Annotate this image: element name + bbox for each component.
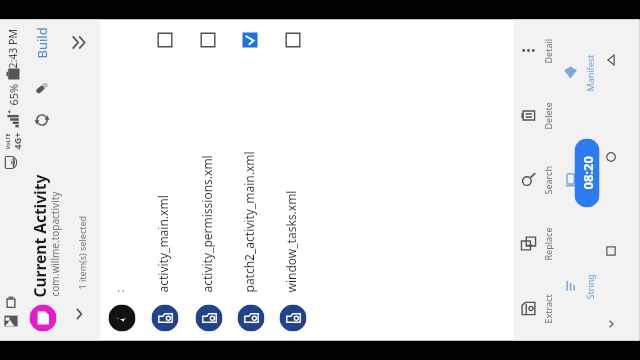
staticText: String — [583, 273, 595, 299]
staticText: activity_main.xml — [154, 194, 170, 292]
button[interactable]: Recents — [598, 239, 622, 263]
staticText: com.willme.topactivity — [47, 191, 61, 296]
button[interactable] — [100, 19, 143, 340]
button[interactable]: Select activity_main.xml — [157, 32, 172, 47]
button[interactable]: Refresh — [29, 108, 53, 132]
staticText: Current Activity — [28, 174, 49, 297]
button[interactable]: Home — [598, 145, 622, 169]
button[interactable]: App icon — [29, 304, 56, 331]
button[interactable]: Build — [29, 26, 53, 58]
button[interactable]: Detail — [513, 19, 559, 83]
staticText: Extract — [541, 293, 553, 323]
button[interactable]: Replace — [513, 212, 559, 276]
button[interactable]: Clear — [29, 76, 53, 100]
staticText: 4G+ — [10, 132, 22, 149]
button[interactable]: Back — [598, 48, 622, 72]
button[interactable] — [187, 19, 230, 340]
button[interactable]: Select activity_permissions.xml — [200, 32, 215, 47]
button[interactable]: 08:20 — [574, 138, 599, 207]
staticText: : — [111, 289, 126, 292]
staticText: Replace — [541, 227, 553, 260]
staticText: Search — [541, 165, 553, 194]
staticText: Manifest — [583, 54, 595, 91]
staticText: VoLTE — [3, 132, 10, 149]
staticText: activity_permissions.xml — [198, 154, 214, 292]
staticText: Detail — [541, 38, 553, 63]
staticText: 2:43 PM — [5, 28, 19, 68]
button[interactable]: Select patch2_activity_main.xml — [242, 32, 257, 47]
staticText: 65% — [5, 83, 20, 105]
button[interactable]: Search — [513, 148, 559, 212]
button[interactable]: Manifest — [557, 19, 599, 126]
button[interactable]: String — [557, 233, 599, 340]
button[interactable]: Delete — [513, 83, 559, 147]
staticText: 08:20 — [578, 155, 596, 189]
button[interactable]: Extract — [513, 276, 559, 340]
button[interactable]: Show more — [66, 30, 90, 54]
button[interactable]: Expand — [66, 302, 90, 326]
staticText: window_tasks.xml — [282, 190, 298, 292]
button[interactable]: Hide — [598, 312, 622, 336]
staticText: 1 item(s) selected — [75, 215, 87, 289]
staticText: Build — [32, 26, 50, 58]
staticText: patch2_activity_main.xml — [240, 150, 256, 292]
button[interactable]: Layout — [557, 126, 599, 233]
staticText: Delete — [541, 101, 553, 129]
button[interactable] — [229, 19, 272, 340]
button[interactable]: Select window_tasks.xml — [285, 32, 300, 47]
button[interactable] — [143, 19, 186, 340]
staticText: Layout — [583, 165, 595, 194]
button[interactable] — [271, 19, 314, 340]
